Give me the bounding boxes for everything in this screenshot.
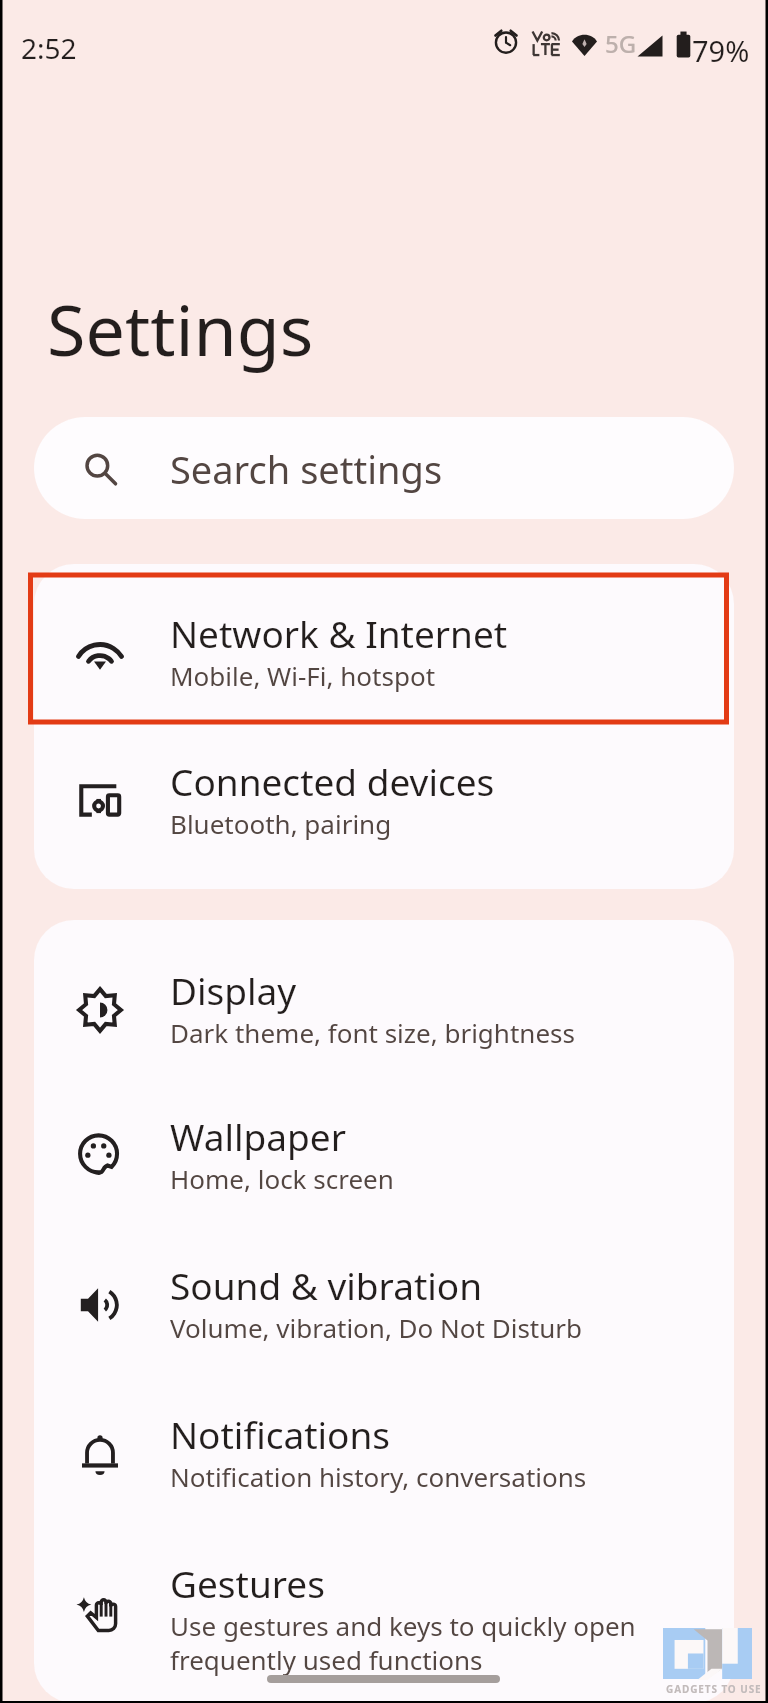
staticText: Settings	[47, 281, 314, 376]
staticText: 79%	[692, 31, 750, 70]
staticText: Connected devices	[170, 756, 495, 806]
staticText: 2:52	[21, 29, 77, 67]
button[interactable]: Search settings	[34, 417, 734, 519]
button[interactable]	[34, 1364, 734, 1512]
staticText: Notification history, conversations	[170, 1459, 587, 1494]
staticText: Search settings	[170, 443, 443, 495]
staticText: Bluetooth, pairing	[170, 806, 392, 841]
staticText: Gestures	[170, 1558, 325, 1608]
staticText: Dark theme, font size, brightness	[170, 1015, 575, 1050]
button[interactable]	[34, 1068, 734, 1216]
staticText: Mobile, Wi-Fi, hotspot	[170, 658, 436, 693]
staticText: Volume, vibration, Do Not Disturb	[170, 1310, 583, 1345]
staticText: Home, lock screen	[170, 1161, 394, 1196]
button[interactable]	[34, 722, 734, 889]
button[interactable]	[34, 1512, 734, 1687]
staticText: Notifications	[170, 1409, 391, 1459]
staticText: Sound & vibration	[170, 1260, 483, 1310]
staticText: Use gestures and keys to quickly open fr…	[170, 1608, 636, 1677]
button[interactable]	[34, 920, 734, 1068]
staticText: Display	[170, 965, 297, 1015]
button[interactable]	[34, 1216, 734, 1364]
button[interactable]	[34, 564, 734, 722]
staticText: Wallpaper	[170, 1111, 346, 1161]
staticText: 5G	[605, 27, 637, 60]
staticText: GADGETS TO USE	[666, 1682, 762, 1696]
staticText: Network & Internet	[170, 608, 508, 658]
